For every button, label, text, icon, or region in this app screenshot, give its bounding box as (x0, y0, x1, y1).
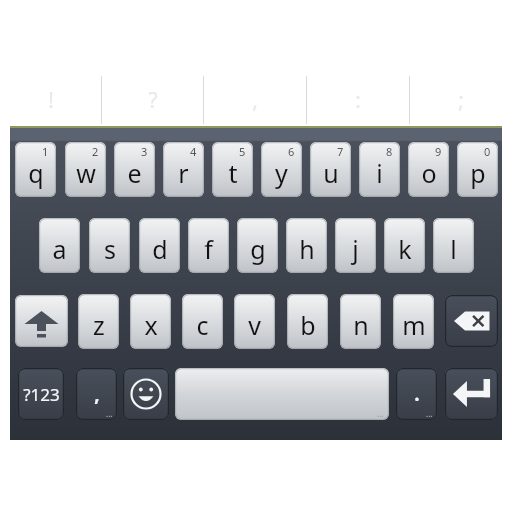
button[interactable]: . (396, 368, 437, 420)
button[interactable]: b (287, 294, 328, 349)
staticText: y (275, 156, 288, 190)
staticText: r (178, 156, 189, 190)
staticText: ... (426, 408, 433, 419)
button[interactable]: Enter (445, 368, 498, 420)
staticText: ... (377, 408, 384, 419)
button[interactable]: , (76, 368, 117, 420)
staticText: e (127, 156, 142, 190)
button[interactable]: m (393, 294, 434, 349)
staticText: j (352, 232, 359, 266)
staticText: 9 (435, 144, 442, 159)
button[interactable]: Shift (15, 295, 68, 347)
button[interactable]: e (114, 142, 155, 197)
staticText: m (402, 308, 426, 342)
staticText: q (28, 156, 44, 190)
button[interactable]: d (139, 218, 180, 273)
staticText: a (52, 232, 67, 266)
staticText: k (398, 232, 412, 266)
button[interactable]: Emoji (123, 368, 169, 420)
staticText: u (323, 156, 339, 190)
button[interactable]: h (286, 218, 327, 273)
button[interactable]: x (130, 294, 171, 349)
button[interactable]: u (310, 142, 351, 197)
staticText: : (355, 86, 361, 115)
staticText: n (353, 308, 369, 342)
button[interactable]: p (457, 142, 498, 197)
button[interactable]: Space (175, 368, 389, 420)
staticText: 1 (42, 144, 49, 159)
button[interactable]: n (340, 294, 381, 349)
staticText: ! (48, 86, 54, 115)
button[interactable]: a (39, 218, 80, 273)
staticText: 2 (92, 144, 99, 159)
button[interactable]: q (15, 142, 56, 197)
staticText: v (248, 308, 261, 342)
staticText: 3 (141, 144, 148, 159)
button[interactable]: f (188, 218, 229, 273)
staticText: c (196, 308, 209, 342)
staticText: t (228, 156, 238, 190)
button[interactable]: t (212, 142, 253, 197)
staticText: . (414, 381, 420, 407)
staticText: 0 (484, 144, 491, 159)
button[interactable]: r (163, 142, 204, 197)
staticText: s (104, 232, 116, 266)
staticText: i (376, 156, 383, 190)
staticText: l (450, 232, 457, 266)
button[interactable]: l (433, 218, 474, 273)
button[interactable]: k (384, 218, 425, 273)
button[interactable]: c (182, 294, 223, 349)
staticText: f (204, 232, 213, 266)
button[interactable]: g (237, 218, 278, 273)
staticText: 8 (386, 144, 393, 159)
button[interactable]: w (65, 142, 106, 197)
staticText: 6 (288, 144, 295, 159)
button[interactable]: ?123 (18, 368, 64, 420)
staticText: , (252, 86, 258, 115)
button[interactable]: Backspace (445, 295, 498, 347)
button[interactable]: z (78, 294, 119, 349)
staticText: h (299, 232, 315, 266)
staticText: ?123 (23, 383, 60, 406)
staticText: 4 (190, 144, 197, 159)
staticText: o (421, 156, 437, 190)
staticText: ; (458, 86, 464, 115)
staticText: 7 (337, 144, 344, 159)
button[interactable]: v (234, 294, 275, 349)
staticText: g (250, 232, 266, 266)
staticText: , (94, 381, 100, 407)
button[interactable]: y (261, 142, 302, 197)
staticText: d (152, 232, 168, 266)
button[interactable]: i (359, 142, 400, 197)
staticText: 5 (239, 144, 246, 159)
button[interactable]: s (89, 218, 130, 273)
staticText: z (93, 308, 105, 342)
staticText: w (76, 156, 96, 190)
button[interactable]: j (335, 218, 376, 273)
button[interactable]: o (408, 142, 449, 197)
staticText: ? (148, 86, 158, 115)
staticText: ... (106, 408, 113, 419)
staticText: b (300, 308, 316, 342)
staticText: x (144, 308, 158, 342)
staticText: p (470, 156, 486, 190)
